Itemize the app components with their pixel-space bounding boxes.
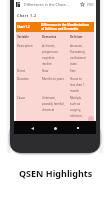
staticText: Differences in the Chara... [24,2,69,7]
staticText: Slow [42,69,69,73]
staticText: Onset [17,69,40,73]
staticText: Cause [17,96,40,100]
staticText: Unknown, possibly familial, chemical [42,96,69,111]
button[interactable]: Recents [73,123,83,133]
staticText: PRO [87,3,94,7]
staticText: Multiple, such as surgery, infection, dr… [70,96,93,119]
staticText: Chart 1-2 [17,13,37,18]
button[interactable]: Back [27,123,37,133]
staticText: An acute, fluctuating confusional state. [70,44,93,65]
button[interactable]: Variable [16,32,94,42]
button[interactable]: Description [16,42,94,67]
button[interactable]: Onset [16,67,94,75]
button[interactable]: Favorite [80,2,85,7]
button[interactable]: Cause [16,94,94,121]
staticText: Delirium [70,35,93,39]
staticText: Months to years [42,77,69,81]
staticText: Differences in the Manifestations of Del… [41,23,94,31]
staticText: QSEN Highlights [19,167,93,179]
button[interactable]: Duration [16,75,94,94]
staticText: Variable [17,35,40,39]
staticText: Dementia [42,35,69,39]
staticText: Description [17,44,40,48]
staticText: A chronic, progressive cognitive decline [42,44,69,65]
staticText: Chart 1-2 [17,25,41,29]
staticText: Duration [17,77,40,81]
button[interactable]: Add note [88,116,94,122]
button[interactable]: Library [16,2,20,7]
staticText: Fast [70,69,93,73]
staticText: Hours to less than 1 month [70,77,93,92]
button[interactable]: Home [50,123,60,133]
